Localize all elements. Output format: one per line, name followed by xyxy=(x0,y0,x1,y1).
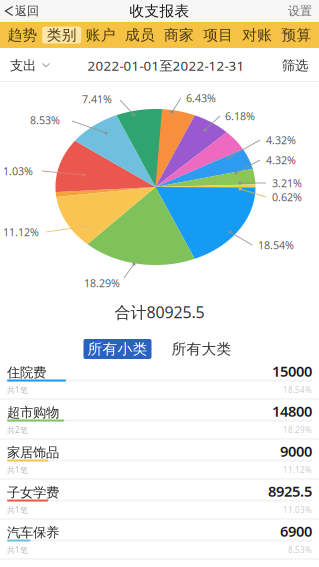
staticText: 趋势 xyxy=(8,26,38,44)
staticText: 收支报表 xyxy=(129,2,189,20)
staticText: 18.54% xyxy=(258,238,294,252)
staticText: 11.12% xyxy=(283,465,312,475)
staticText: 共2笔 xyxy=(7,425,28,435)
staticText: 商家 xyxy=(164,26,194,44)
staticText: 汽车保养 xyxy=(7,524,59,541)
staticText: 8925.5 xyxy=(268,481,312,501)
staticText: 15000 xyxy=(272,361,312,381)
button[interactable]: 商家 xyxy=(159,26,199,43)
staticText: 6.18% xyxy=(225,109,255,123)
staticText: 4.32% xyxy=(266,133,296,147)
staticText: 8.53% xyxy=(288,545,312,555)
button[interactable]: 返回 xyxy=(0,0,62,22)
staticText: 7.41% xyxy=(82,92,112,106)
staticText: 14800 xyxy=(272,401,312,421)
button[interactable]: 类别 xyxy=(42,26,81,43)
staticText: 18.54% xyxy=(283,385,312,395)
staticText: 合计80925.5 xyxy=(114,301,204,323)
staticText: 账户 xyxy=(86,26,116,44)
staticText: 所有小类 xyxy=(87,340,147,358)
staticText: 子女学费 xyxy=(7,484,59,501)
button[interactable]: 超市购物 xyxy=(0,401,319,441)
button[interactable]: 筛选 xyxy=(282,49,319,82)
staticText: 项目 xyxy=(203,26,233,44)
staticText: 4.32% xyxy=(266,153,296,167)
staticText: 类别 xyxy=(47,26,77,44)
staticText: 2022-01-01至2022-12-31 xyxy=(87,57,244,74)
staticText: 成员 xyxy=(125,26,155,44)
staticText: 1.03% xyxy=(3,164,33,178)
staticText: 共1笔 xyxy=(7,505,28,515)
button[interactable]: 子女学费 xyxy=(0,481,319,521)
button[interactable]: 账户 xyxy=(81,26,120,43)
staticText: 超市购物 xyxy=(7,404,59,421)
staticText: 筛选 xyxy=(282,57,308,74)
staticText: 设置 xyxy=(288,4,312,18)
staticText: 支出 xyxy=(10,57,36,74)
button[interactable]: 趋势 xyxy=(3,26,42,43)
button[interactable]: 家居饰品 xyxy=(0,441,319,481)
staticText: 18.29% xyxy=(84,276,120,290)
staticText: 3.21% xyxy=(272,176,302,190)
button[interactable]: 所有大类 xyxy=(167,339,235,359)
staticText: 所有大类 xyxy=(171,340,231,358)
staticText: 0.62% xyxy=(272,190,302,204)
staticText: 家居饰品 xyxy=(7,444,59,461)
button[interactable]: 项目 xyxy=(199,26,238,43)
staticText: 返回 xyxy=(15,4,39,18)
button[interactable]: 住院费 xyxy=(0,361,319,401)
staticText: 8.53% xyxy=(30,113,60,127)
staticText: 共1笔 xyxy=(7,385,28,395)
staticText: 6.43% xyxy=(186,91,216,105)
staticText: 11.12% xyxy=(3,225,39,239)
button[interactable]: 设置 xyxy=(257,0,319,22)
staticText: 预算 xyxy=(281,26,311,44)
staticText: 11.03% xyxy=(283,505,312,515)
button[interactable]: 预算 xyxy=(277,26,316,43)
staticText: 对账 xyxy=(242,26,272,44)
staticText: 住院费 xyxy=(7,364,46,381)
button[interactable]: 成员 xyxy=(120,26,159,43)
staticText: 18.29% xyxy=(283,425,312,435)
staticText: 9000 xyxy=(280,441,312,461)
staticText: 共1笔 xyxy=(7,465,28,475)
button[interactable]: 支出 xyxy=(0,49,50,82)
button[interactable]: 对账 xyxy=(238,26,277,43)
button[interactable]: 汽车保养 xyxy=(0,521,319,561)
staticText: 6900 xyxy=(280,521,312,541)
staticText: 共1笔 xyxy=(7,545,28,555)
button[interactable]: 所有小类 xyxy=(83,339,151,359)
